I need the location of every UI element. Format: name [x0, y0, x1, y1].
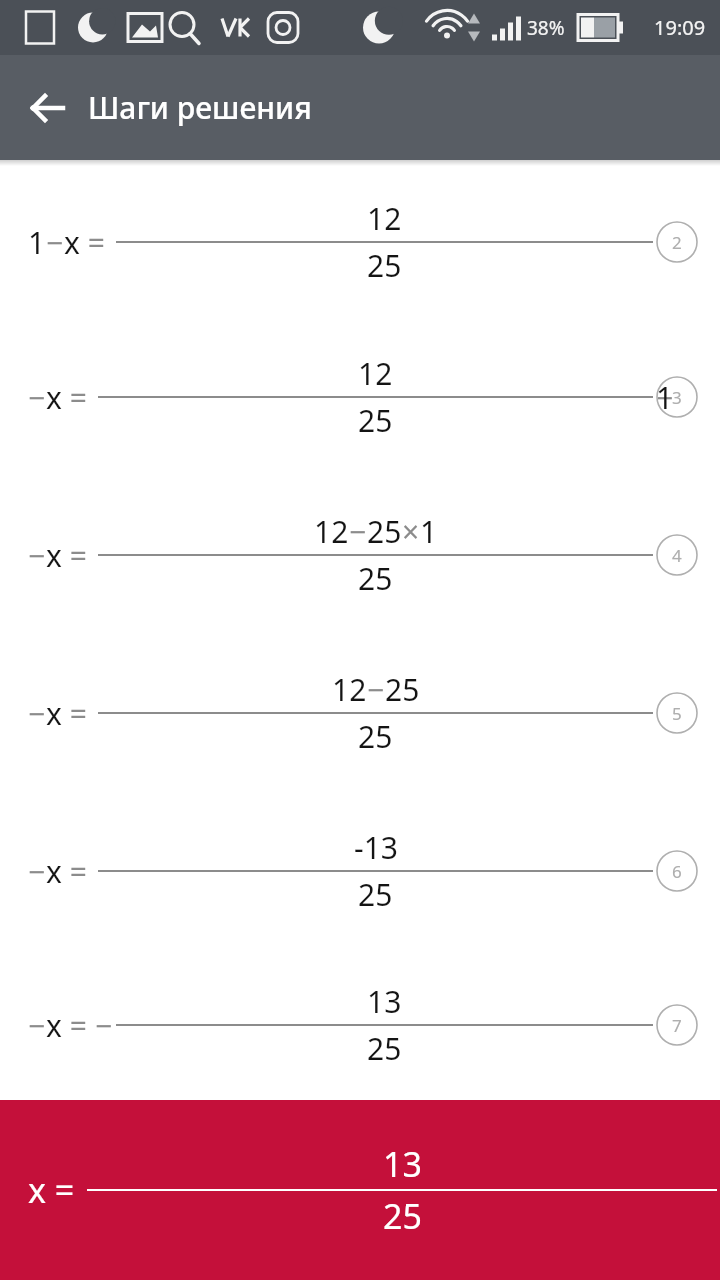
button[interactable]: Back — [22, 82, 74, 134]
staticText: 2 — [672, 231, 682, 254]
staticText: 25 — [367, 245, 402, 286]
button[interactable]: Step 6 — [656, 850, 698, 892]
staticText: Шаги решения — [88, 87, 312, 128]
staticText: 13 — [367, 981, 402, 1022]
staticText: 1 — [28, 222, 46, 263]
staticText: 1 — [420, 511, 438, 552]
staticText: = — [62, 535, 95, 576]
staticText: 3 — [672, 386, 682, 409]
staticText: 12 — [332, 669, 367, 710]
button[interactable]: Step 3 — [656, 376, 698, 418]
staticText: 7 — [672, 1014, 682, 1037]
staticText: -13 — [354, 827, 398, 868]
staticText: = — [80, 222, 113, 263]
staticText: 25 — [367, 511, 402, 552]
staticText: 13 — [383, 1141, 422, 1187]
staticText: 12 — [358, 353, 393, 394]
button[interactable]: Step 2 — [656, 221, 698, 263]
button[interactable]: Step 5 — [656, 692, 698, 734]
staticText: − — [28, 535, 46, 576]
staticText: − — [28, 1005, 46, 1046]
staticText: 25 — [358, 874, 393, 915]
staticText: 19:09 — [654, 14, 706, 41]
staticText: − — [367, 669, 385, 710]
staticText: x — [46, 851, 62, 892]
staticText: − — [349, 511, 367, 552]
button[interactable]: − — [0, 950, 720, 1100]
staticText: 12 — [367, 198, 402, 239]
staticText: x — [46, 693, 62, 734]
button[interactable]: − — [0, 318, 720, 476]
staticText: 5 — [672, 702, 682, 725]
staticText: 4 — [672, 544, 682, 567]
staticText: = — [46, 1167, 84, 1213]
staticText: 38% — [527, 15, 565, 41]
staticText: − — [28, 851, 46, 892]
button[interactable]: Step 4 — [656, 534, 698, 576]
button[interactable]: − — [0, 476, 720, 634]
staticText: = — [62, 1005, 95, 1046]
button[interactable]: 1 — [0, 166, 720, 318]
staticText: − — [95, 1005, 113, 1046]
staticText: − — [28, 377, 46, 418]
staticText: x — [46, 535, 62, 576]
button[interactable]: Step 7 — [656, 1004, 698, 1046]
staticText: 6 — [672, 860, 682, 883]
staticText: × — [402, 511, 420, 552]
staticText: x — [46, 1005, 62, 1046]
staticText: 25 — [358, 558, 393, 599]
staticText: x — [46, 377, 62, 418]
button[interactable]: − — [0, 634, 720, 792]
staticText: = — [62, 851, 95, 892]
staticText: = — [62, 693, 95, 734]
staticText: x — [64, 222, 80, 263]
staticText: = — [62, 377, 95, 418]
staticText: − — [28, 693, 46, 734]
staticText: 25 — [358, 716, 393, 757]
staticText: 25 — [385, 669, 420, 710]
staticText: 12 — [314, 511, 349, 552]
staticText: x — [28, 1167, 46, 1213]
button[interactable]: x — [0, 1100, 720, 1280]
staticText: 25 — [383, 1193, 422, 1239]
staticText: 25 — [367, 1028, 402, 1069]
staticText: 25 — [358, 400, 393, 441]
button[interactable]: − — [0, 792, 720, 950]
staticText: − — [46, 222, 64, 263]
